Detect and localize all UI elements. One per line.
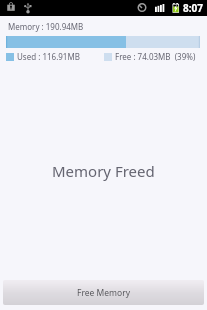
staticText: Memory Freed xyxy=(52,161,155,181)
other: Secure storage xyxy=(7,2,15,11)
staticText: Free : 74.03MB (39%) xyxy=(115,51,196,62)
other: Silent mode xyxy=(137,3,147,12)
staticText: 8:07 xyxy=(183,1,203,15)
other: Battery charging xyxy=(172,3,180,13)
staticText: Used : 116.91MB xyxy=(17,51,80,62)
button[interactable]: Free Memory xyxy=(3,280,204,305)
staticText: Free Memory xyxy=(77,287,130,299)
staticText: Memory : 190.94MB xyxy=(8,21,84,32)
